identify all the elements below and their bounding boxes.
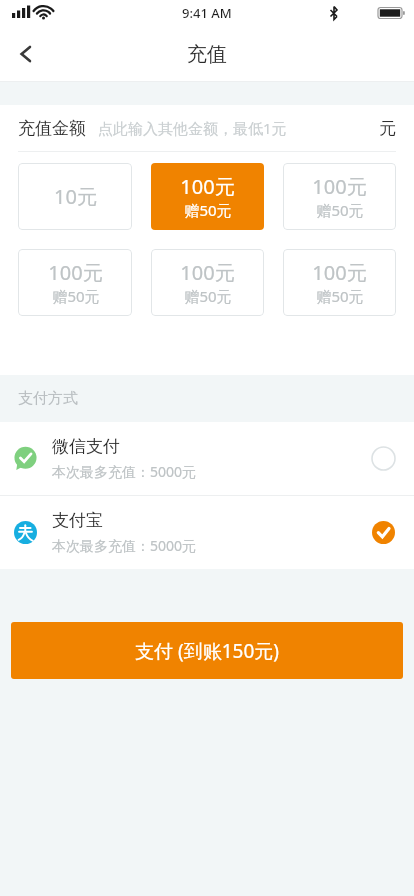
button[interactable]: 100元 [151,249,264,316]
staticText: 本次最多充值：5000元 [52,462,197,481]
button[interactable]: 返回 [0,28,52,80]
button[interactable]: 选择 [371,446,396,471]
staticText: 元 [379,118,396,139]
button[interactable]: 100元 [283,163,396,230]
staticText: 赠50元 [316,200,364,220]
staticText: 支付方式 [18,389,78,408]
button[interactable]: 10元 [18,163,132,230]
staticText: 10元 [54,183,97,210]
staticText: 支付 (到账150元) [135,638,279,664]
staticText: 100元 [180,173,235,200]
staticText: 赠50元 [316,286,364,306]
staticText: 支付宝 [52,510,103,531]
staticText: 9:41 AM [182,4,232,22]
button[interactable]: 100元 [283,249,396,316]
button[interactable]: 支付宝 [0,496,414,569]
staticText: 100元 [312,173,367,200]
staticText: 充值金额 [18,118,86,139]
button[interactable]: 微信支付 [0,422,414,495]
staticText: 点此输入其他金额，最低1元 [98,118,287,138]
staticText: 100元 [180,259,235,286]
staticText: 赠50元 [184,286,232,306]
staticText: 100元 [312,259,367,286]
button[interactable]: 100元 [151,163,264,230]
staticText: 赠50元 [184,200,232,220]
staticText: 赠50元 [52,286,100,306]
button[interactable]: 100元 [18,249,132,316]
staticText: 充值 [187,42,227,67]
staticText: 100元 [48,259,103,286]
staticText: 微信支付 [52,436,120,457]
button[interactable]: 已选择 [371,520,396,545]
button[interactable]: 支付 (到账150元) [11,622,403,679]
staticText: 本次最多充值：5000元 [52,536,197,555]
